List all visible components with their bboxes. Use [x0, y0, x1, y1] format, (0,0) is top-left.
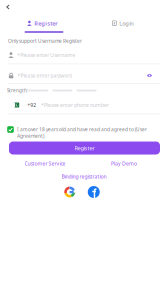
staticText: I am over 18 years old and have read and… — [17, 126, 147, 139]
button[interactable]: Sign in with Facebook — [88, 186, 100, 198]
staticText: *Please enter password — [17, 72, 72, 79]
button[interactable]: Sign in with Google — [64, 186, 75, 197]
staticText: Play Demo — [111, 160, 137, 167]
button[interactable]: Register — [0, 15, 84, 33]
staticText: Login — [119, 19, 134, 27]
button[interactable]: Show password — [145, 71, 154, 80]
staticText: *Please enter phone number — [41, 101, 109, 108]
staticText: Binding registration — [61, 173, 106, 180]
staticText: Register — [74, 144, 94, 152]
button[interactable]: Customer Service — [16, 159, 74, 168]
staticText: Strength: — [7, 87, 28, 94]
staticText: +92 — [27, 102, 36, 108]
button[interactable]: Login — [84, 15, 168, 33]
button[interactable]: Agree to terms — [7, 126, 14, 133]
button[interactable]: Register — [9, 141, 160, 154]
button[interactable]: Play Demo — [95, 159, 153, 168]
staticText: Only support Username Register — [8, 37, 82, 44]
staticText: *Please enter Username — [17, 51, 75, 58]
button[interactable]: Back — [1, 0, 15, 14]
button[interactable]: Binding registration — [0, 172, 168, 180]
staticText: Customer Service — [24, 160, 65, 167]
button[interactable]: +92 — [14, 99, 37, 111]
staticText: Register — [34, 19, 57, 27]
